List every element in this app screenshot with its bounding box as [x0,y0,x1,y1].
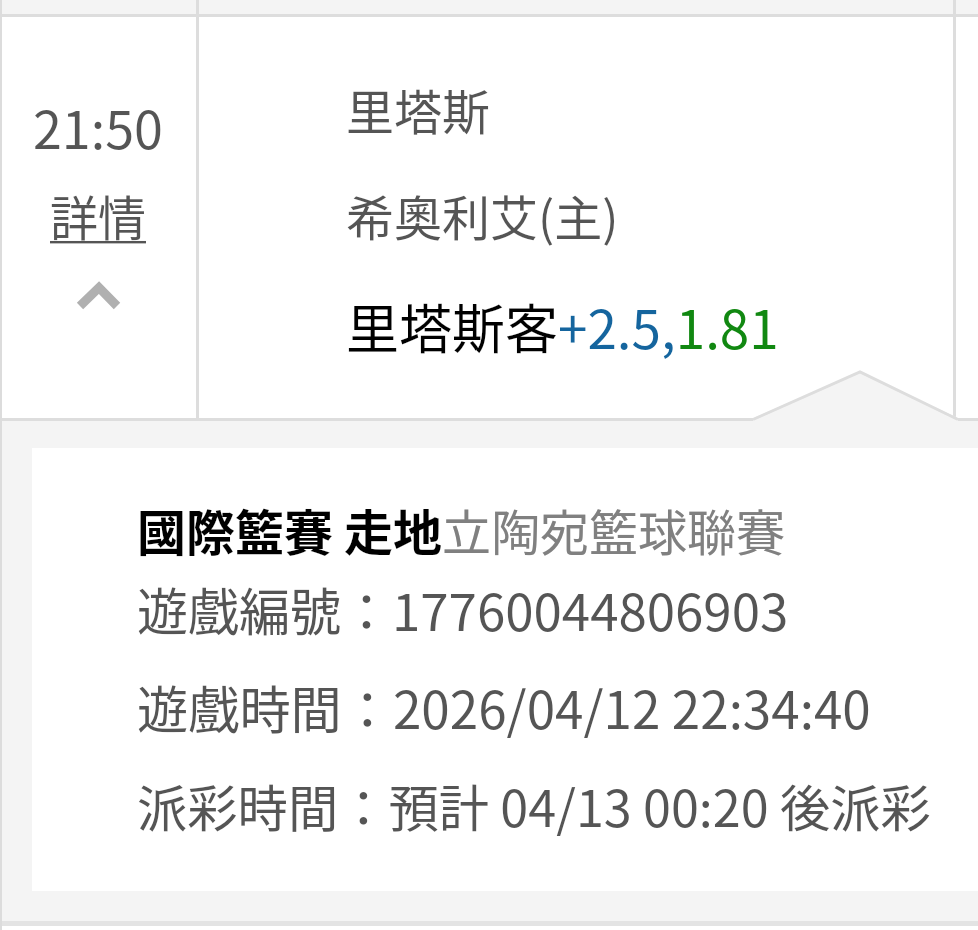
staticText: 遊戲編號：17760044806903 [137,572,789,646]
staticText: 里塔斯 [346,74,491,144]
staticText: 希奧利艾(主) [346,180,619,250]
button[interactable]: 21:50 [0,17,196,418]
button[interactable] [32,448,978,891]
other: Collapse [72,276,124,316]
staticText: 遊戲時間：2026/04/12 22:34:40 [137,670,871,744]
staticText: 里塔斯客+2.5,1.81 [346,288,779,365]
staticText: 詳情 [50,180,147,250]
button[interactable]: 里塔斯 [346,17,779,365]
staticText: 21:50 [33,89,163,164]
staticText: 國際籃賽 走地立陶宛籃球聯賽 [137,494,786,565]
staticText: 派彩時間：預計 04/13 00:20 後派彩 [137,769,931,842]
